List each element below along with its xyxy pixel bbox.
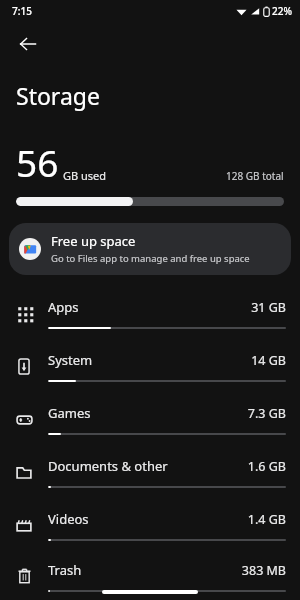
button[interactable]: Back xyxy=(8,24,48,64)
staticText: Games xyxy=(48,404,91,422)
staticText: GB used xyxy=(63,168,107,183)
button[interactable]: Apps xyxy=(0,287,300,340)
button[interactable]: Free up space xyxy=(9,223,291,275)
staticText: 7.3 GB xyxy=(247,405,286,422)
staticText: 14 GB xyxy=(251,352,286,369)
staticText: Go to Files app to manage and free up sp… xyxy=(51,252,250,265)
staticText: 56 xyxy=(16,137,59,187)
staticText: 128 GB total xyxy=(226,169,284,183)
staticText: System xyxy=(48,351,93,369)
staticText: 22% xyxy=(272,4,292,18)
staticText: 7:15 xyxy=(12,4,32,18)
button[interactable]: Games xyxy=(0,393,300,446)
button[interactable]: Trash xyxy=(0,552,300,600)
staticText: Free up space xyxy=(51,232,136,250)
staticText: Trash xyxy=(48,561,82,579)
staticText: 1.4 GB xyxy=(247,511,286,528)
button[interactable]: Videos xyxy=(0,499,300,552)
staticText: 1.6 GB xyxy=(247,458,286,475)
staticText: 31 GB xyxy=(251,299,286,316)
button[interactable]: Documents & other xyxy=(0,446,300,499)
staticText: Videos xyxy=(48,510,89,528)
staticText: Storage xyxy=(16,80,100,111)
staticText: Documents & other xyxy=(48,457,168,475)
staticText: Apps xyxy=(48,298,79,316)
button[interactable]: System xyxy=(0,340,300,393)
staticText: 383 MB xyxy=(241,562,286,579)
